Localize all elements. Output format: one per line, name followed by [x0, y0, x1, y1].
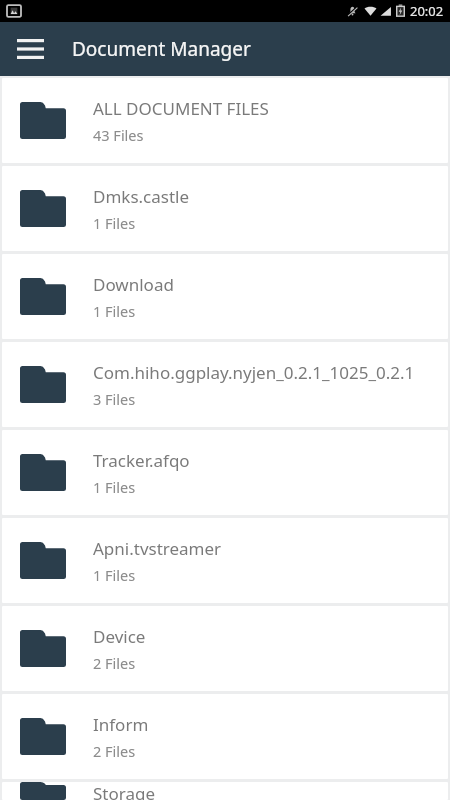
staticText: ALL DOCUMENT FILES: [93, 97, 269, 120]
staticText: Inform: [93, 713, 149, 736]
staticText: Device: [93, 625, 146, 648]
button[interactable]: Inform: [2, 694, 448, 779]
staticText: 3 Files: [93, 389, 136, 409]
button[interactable]: ALL DOCUMENT FILES: [2, 78, 448, 163]
button[interactable]: Storage: [2, 782, 448, 800]
staticText: Document Manager: [72, 36, 251, 62]
button[interactable]: Com.hiho.ggplay.nyjen_0.2.1_1025_0.2.1: [2, 342, 448, 427]
staticText: 20:02: [410, 2, 444, 20]
staticText: 1 Files: [93, 565, 136, 585]
staticText: 2 Files: [93, 653, 136, 673]
staticText: Apni.tvstreamer: [93, 537, 222, 560]
staticText: Tracker.afqo: [93, 449, 190, 472]
staticText: 2 Files: [93, 741, 136, 761]
staticText: Download: [93, 273, 174, 296]
staticText: Com.hiho.ggplay.nyjen_0.2.1_1025_0.2.1: [93, 361, 415, 384]
button[interactable]: Apni.tvstreamer: [2, 518, 448, 603]
staticText: Dmks.castle: [93, 185, 190, 208]
button[interactable]: Device: [2, 606, 448, 691]
staticText: 43 Files: [93, 125, 144, 145]
button[interactable]: Open navigation menu: [8, 27, 52, 71]
staticText: 1 Files: [93, 477, 136, 497]
staticText: 1 Files: [93, 301, 136, 321]
button[interactable]: Download: [2, 254, 448, 339]
button[interactable]: Dmks.castle: [2, 166, 448, 251]
staticText: Storage: [93, 782, 156, 800]
staticText: 1 Files: [93, 213, 136, 233]
button[interactable]: Tracker.afqo: [2, 430, 448, 515]
